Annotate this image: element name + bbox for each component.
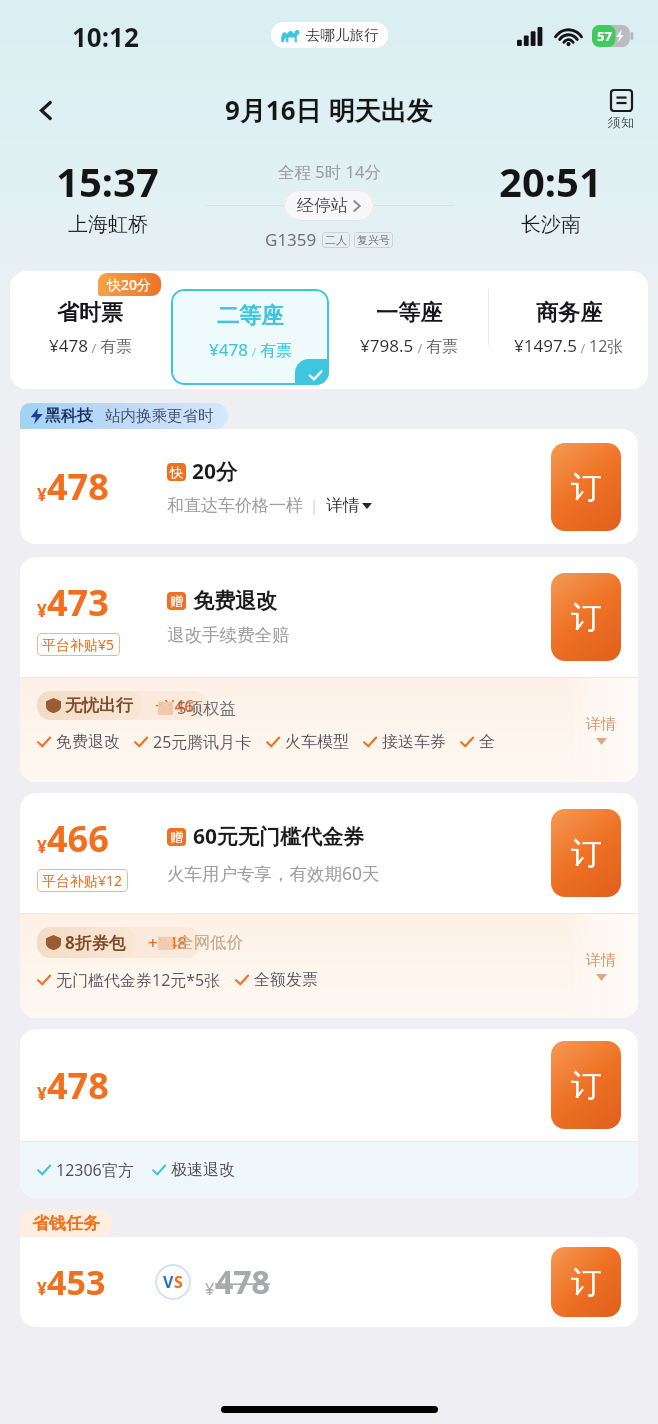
staticText: ¥ [37,835,47,858]
staticText: 订 [571,834,602,873]
staticText: 黑科技 [45,406,93,426]
staticText: G1359 [265,228,317,251]
staticText: 订 [571,468,602,507]
staticText: | [303,496,326,515]
staticText: 10:12 [72,19,139,54]
staticText: 火车模型 [285,732,349,752]
staticText: 上海虹桥 [68,212,148,237]
staticText: 订 [571,1066,602,1105]
staticText: / [88,339,100,357]
staticText: 无忧出行 [65,695,133,716]
staticText: 复兴号 [357,233,390,247]
staticText: 466 [47,814,109,863]
staticText: 60元无门槛代金券 [193,822,365,851]
staticText: 25元腾讯月卡 [153,731,252,753]
staticText: 赠 [170,829,183,845]
button[interactable]: 订 [551,1247,621,1317]
staticText: 473 [47,578,109,627]
staticText: 详情 [326,495,360,516]
staticText: V [163,1271,174,1293]
button[interactable]: 详情 [569,914,633,1018]
staticText: 省钱任务 [32,1213,100,1234]
button[interactable]: 订 [551,573,621,661]
staticText: ¥ [37,599,47,622]
button[interactable]: ¥ [20,1029,638,1198]
staticText: 有票 [260,341,292,361]
button[interactable]: 经停站 [284,190,374,221]
button[interactable]: Back [24,88,68,132]
staticText: 火车用户专享，有效期60天 [167,861,380,885]
staticText: 订 [571,598,602,637]
staticText: ¥ [37,1082,47,1105]
staticText: ¥1497.5 [514,334,577,357]
staticText: 平台补贴¥12 [42,871,123,890]
staticText: 二等座 [217,302,283,330]
staticText: 和直达车价格一样 [167,495,303,516]
staticText: 20:51 [499,154,602,208]
staticText: ⼆⼈ [325,233,347,247]
staticText: 无门槛代金券12元*5张 [56,969,221,991]
staticText: 8折券包 [65,931,126,954]
staticText: 478 [47,1061,109,1110]
staticText: 478 [215,1260,270,1304]
staticText: ¥ [205,1278,215,1300]
staticText: 去哪儿旅行 [306,26,379,44]
button[interactable]: ¥ [20,429,638,544]
button[interactable]: ¥ [20,793,638,1018]
button[interactable]: 订 [551,443,621,531]
staticText: 站内换乘更省时 [105,406,214,426]
staticText: 退改手续费全赔 [167,624,290,646]
staticText: 须知 [608,114,634,130]
staticText: 极速退改 [171,1160,235,1180]
staticText: / [414,339,426,357]
staticText: 免费退改 [56,732,120,752]
staticText: 经停站 [297,195,348,216]
staticText: 12张 [589,335,624,357]
staticText: 订 [571,1263,602,1302]
staticText: 15:37 [56,154,159,208]
staticText: 详情 [586,715,616,734]
staticText: 长沙南 [521,212,581,237]
staticText: 快20分 [107,275,152,294]
staticText: 57 [597,27,612,45]
staticText: 全 [479,732,495,752]
staticText: 全程 5时 14分 [278,160,381,183]
staticText: ¥478 [209,338,248,361]
button[interactable]: 须知 [604,86,638,134]
staticText: 5项权益 [177,696,236,719]
button[interactable]: 省时票 [10,289,170,357]
button[interactable]: ¥ [20,557,638,782]
staticText: 全额发票 [254,970,318,990]
staticText: +¥46 [155,694,194,717]
staticText: 12306官方 [56,1159,134,1181]
staticText: / [248,343,260,361]
staticText: 有票 [100,337,132,357]
staticText: 453 [47,1259,106,1305]
staticText: / [577,339,589,357]
staticText: ¥478 [49,334,88,357]
staticText: S [174,1271,183,1293]
staticText: 免费退改 [193,588,277,614]
staticText: 一等座 [376,299,442,327]
staticText: 详情 [586,951,616,970]
staticText: 20分 [192,457,238,486]
staticText: 快 [170,464,183,480]
staticText: 商务座 [536,299,602,327]
staticText: 赠 [170,593,183,609]
button[interactable]: 商务座 [489,289,648,357]
staticText: 接送车券 [382,732,446,752]
staticText: 9月16日 明天出发 [225,92,433,128]
button[interactable]: 详情 [569,678,633,782]
staticText: 有票 [426,337,458,357]
staticText: +¥48 [148,931,187,954]
button[interactable]: 二等座 [171,289,329,385]
button[interactable]: 一等座 [329,289,488,357]
staticText: 478 [47,462,109,511]
staticText: ¥798.5 [360,334,414,357]
staticText: 平台补贴¥5 [42,635,115,654]
button[interactable]: 订 [551,809,621,897]
button[interactable]: ¥ [20,1237,638,1327]
button[interactable]: 订 [551,1041,621,1129]
staticText: 全网低价 [177,932,243,953]
staticText: ¥ [37,1277,47,1300]
